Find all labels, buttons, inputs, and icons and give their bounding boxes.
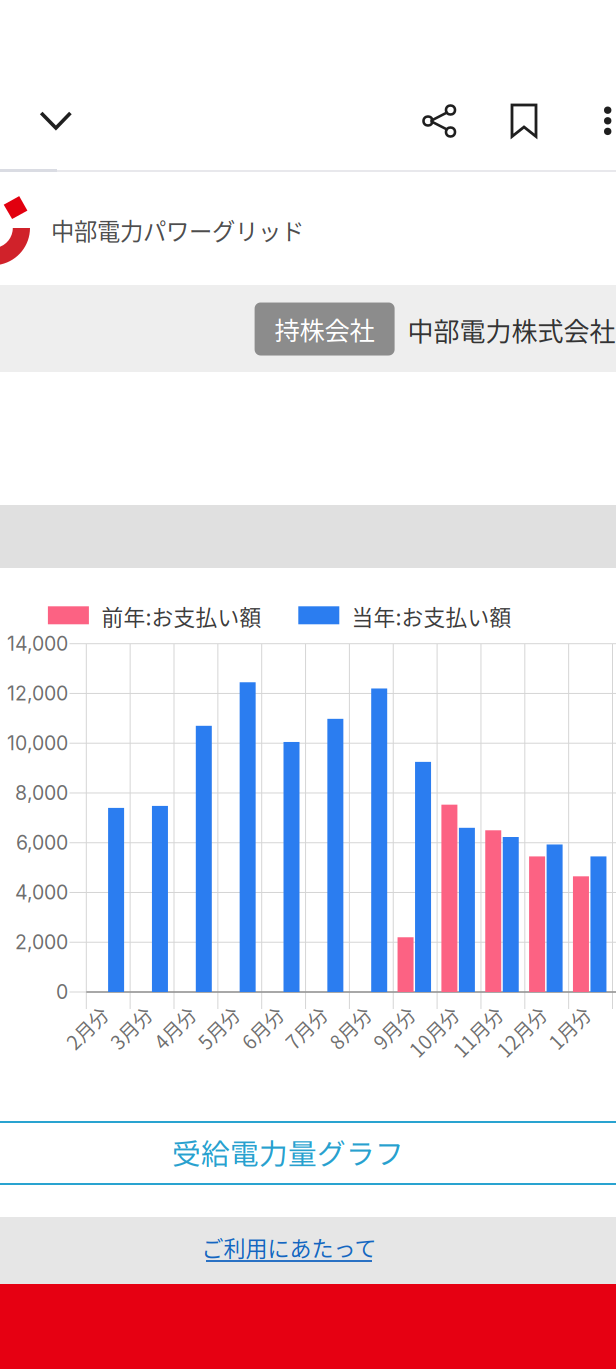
staticText: 7月分 (274, 996, 323, 1025)
staticText: 6月分 (231, 996, 280, 1025)
staticText: 6,000 (16, 831, 68, 855)
staticText: 14,000 (7, 632, 68, 655)
staticText: 10月分 (395, 996, 455, 1025)
button[interactable]: More options (584, 89, 616, 153)
staticText: 2月分 (55, 996, 104, 1025)
button[interactable]: Collapse (20, 85, 92, 157)
staticText: 10,000 (7, 731, 68, 755)
staticText: ご利用にあたって (201, 1231, 376, 1263)
staticText: 当年:お支払い額 (351, 600, 511, 632)
staticText: 受給電力量グラフ (172, 1131, 404, 1173)
staticText: 12月分 (483, 996, 543, 1025)
staticText: 前年:お支払い額 (101, 600, 261, 632)
staticText: 11月分 (439, 996, 499, 1025)
button[interactable]: Bookmark (494, 89, 554, 153)
staticText: 5月分 (187, 996, 236, 1025)
staticText: 持株会社 (275, 311, 375, 347)
staticText: 12,000 (7, 682, 68, 705)
staticText: 3月分 (99, 996, 148, 1025)
button[interactable]: Share (408, 89, 472, 153)
staticText: 4月分 (143, 996, 192, 1025)
staticText: 9月分 (362, 996, 411, 1025)
staticText: 0 (56, 980, 68, 1004)
staticText: 中部電力パワーグリッド (51, 213, 304, 247)
staticText: 4,000 (15, 881, 68, 904)
button[interactable]: 受給電力量グラフ (0, 1121, 616, 1185)
staticText: 8,000 (15, 781, 68, 805)
staticText: 8月分 (318, 996, 367, 1025)
staticText: 1月分 (538, 996, 587, 1025)
button[interactable]: ご利用にあたって (159, 1223, 419, 1271)
staticText: 中部電力株式会社 (407, 311, 615, 349)
staticText: 2,000 (15, 930, 68, 954)
